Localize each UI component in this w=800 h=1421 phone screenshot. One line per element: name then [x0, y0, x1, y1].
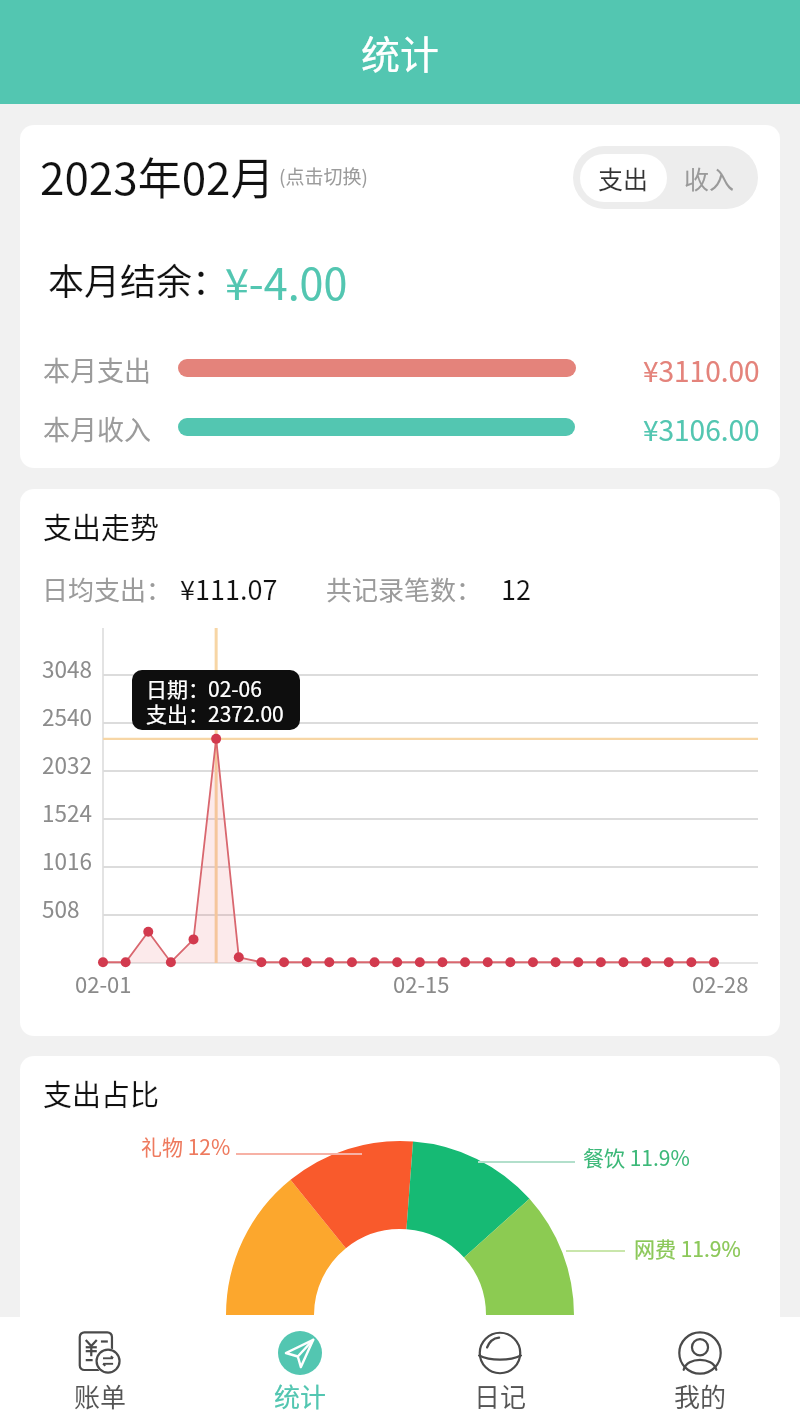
staticText: 02-06 — [208, 673, 262, 703]
staticText: 支出占比 — [43, 1072, 160, 1114]
staticText: 12 — [501, 569, 531, 608]
staticText: 2023年02月 — [40, 144, 275, 208]
staticText: 1016 — [42, 844, 92, 877]
staticText: 礼物 12% — [141, 1131, 231, 1161]
staticText: 2032 — [42, 748, 92, 781]
staticText: 网费 11.9% — [634, 1233, 741, 1263]
staticText: 共记录笔数： — [326, 570, 483, 608]
staticText: 02-01 — [75, 967, 132, 999]
staticText: 支出 — [598, 160, 649, 196]
staticText: 3048 — [42, 652, 92, 685]
staticText: 支出走势 — [43, 505, 160, 547]
button[interactable]: 支出 — [580, 154, 667, 202]
staticText: 统计 — [274, 1377, 327, 1415]
staticText: 本月支出 — [43, 350, 151, 386]
staticText: 账单 — [74, 1377, 127, 1415]
staticText: 508 — [42, 892, 80, 925]
staticText: 本月收入 — [43, 409, 151, 445]
staticText: 2372.00 — [208, 698, 284, 728]
staticText: ¥3110.00 — [643, 350, 760, 386]
button[interactable]: 统计 — [200, 1317, 400, 1421]
staticText: 统计 — [361, 24, 440, 80]
staticText: 2540 — [42, 700, 92, 733]
button[interactable]: 账单 — [0, 1317, 200, 1421]
staticText: 我的 — [674, 1377, 727, 1415]
staticText: 02-15 — [393, 967, 450, 999]
button[interactable]: 日记 — [400, 1317, 600, 1421]
staticText: (点击切换) — [279, 162, 368, 190]
staticText: ¥111.07 — [180, 569, 278, 608]
staticText: 日均支出： — [42, 570, 173, 608]
staticText: ¥-4.00 — [225, 250, 348, 312]
button[interactable]: 我的 — [600, 1317, 800, 1421]
staticText: ¥3106.00 — [643, 409, 760, 445]
staticText: 收入 — [684, 160, 735, 196]
staticText: 日记 — [474, 1377, 527, 1415]
staticText: 支出： — [146, 698, 209, 728]
staticText: 餐饮 11.9% — [583, 1142, 690, 1172]
button[interactable]: 2023年02月 — [40, 144, 368, 208]
staticText: 1524 — [42, 796, 92, 829]
button[interactable]: 收入 — [667, 154, 751, 202]
staticText: 本月结余： — [48, 253, 229, 305]
staticText: 02-28 — [692, 967, 749, 999]
staticText: 日期： — [146, 673, 209, 703]
